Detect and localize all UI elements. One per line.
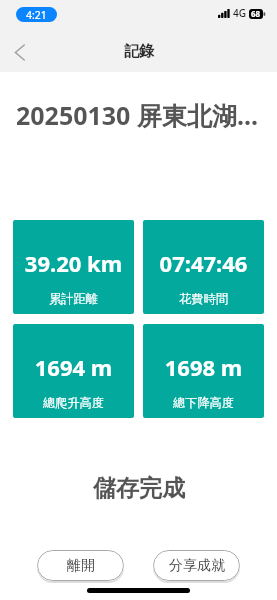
button[interactable]: 1698 m xyxy=(143,324,264,418)
staticText: 07:47:46 xyxy=(143,248,264,278)
button[interactable]: Back xyxy=(3,36,36,69)
staticText: 4G xyxy=(233,6,246,20)
staticText: 記錄 xyxy=(124,42,154,61)
staticText: 總下降高度 xyxy=(143,395,264,410)
button[interactable]: 07:47:46 xyxy=(143,220,264,314)
staticText: 1698 m xyxy=(143,352,264,382)
button[interactable]: 39.20 km xyxy=(13,220,134,314)
staticText: 4:21 xyxy=(26,8,47,22)
button[interactable]: 分享成就 xyxy=(153,550,240,581)
staticText: 分享成就 xyxy=(169,557,225,575)
staticText: 花費時間 xyxy=(143,291,264,306)
button[interactable]: 1694 m xyxy=(13,324,134,418)
button[interactable]: 離開 xyxy=(37,550,124,581)
staticText: 離開 xyxy=(67,557,95,575)
staticText: 68 xyxy=(251,8,261,19)
staticText: 總爬升高度 xyxy=(13,395,134,410)
staticText: 1694 m xyxy=(13,352,134,382)
staticText: 20250130 屏東北湖... xyxy=(16,98,258,132)
staticText: 累計距離 xyxy=(13,291,134,306)
staticText: 39.20 km xyxy=(13,248,134,278)
staticText: 儲存完成 xyxy=(93,474,185,503)
